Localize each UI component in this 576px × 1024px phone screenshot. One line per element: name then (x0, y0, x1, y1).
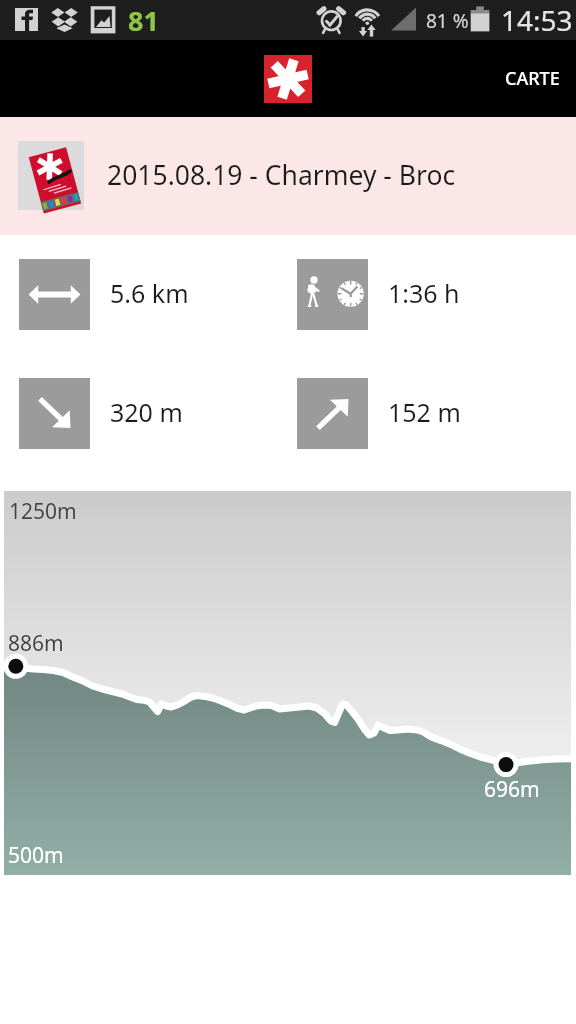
staticText: 696m (484, 775, 540, 804)
staticText: 152 m (388, 395, 461, 429)
other: Duration (297, 259, 368, 330)
staticText: 2015.08.19 - Charmey - Broc (107, 157, 456, 193)
staticText: 1250m (9, 497, 77, 526)
other: Distance (19, 259, 90, 330)
other: Descent (19, 378, 90, 449)
other: Ascent (297, 378, 368, 449)
staticText: 320 m (110, 395, 183, 429)
staticText: 14:53 (501, 1, 573, 39)
button[interactable]: Descent (0, 378, 278, 449)
staticText: CARTE (505, 66, 560, 91)
button[interactable]: 2015.08.19 - Charmey - Broc (0, 117, 576, 235)
button[interactable]: Swiss logo (264, 55, 312, 103)
staticText: 5.6 km (110, 276, 189, 310)
staticText: 81 % (426, 8, 469, 34)
staticText: 886m (8, 629, 64, 658)
button[interactable]: Duration (278, 259, 576, 330)
button[interactable]: CARTE (487, 46, 576, 111)
button[interactable]: Ascent (278, 378, 576, 449)
staticText: 1:36 h (388, 276, 460, 310)
button[interactable]: Distance (0, 259, 278, 330)
staticText: 81 (128, 2, 159, 39)
staticText: 500m (8, 841, 64, 870)
